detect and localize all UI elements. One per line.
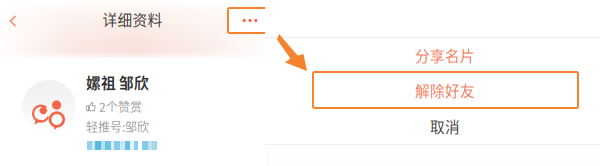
staticText: 分享名片: [415, 44, 475, 66]
button[interactable]: 分享名片: [305, 38, 585, 72]
button[interactable]: 更多: [228, 8, 272, 33]
staticText: 轻推号:邹欣: [86, 118, 149, 135]
staticText: 嫘祖 邹欣: [86, 71, 149, 93]
button[interactable]: 返回: [3, 12, 23, 30]
button[interactable]: 取消: [305, 108, 585, 144]
staticText: 详细资料: [102, 8, 162, 30]
staticText: 解除好友: [415, 79, 475, 101]
staticText: 取消: [430, 115, 460, 137]
button[interactable]: 解除好友: [305, 72, 585, 108]
staticText: 2个赞赏: [99, 98, 142, 115]
